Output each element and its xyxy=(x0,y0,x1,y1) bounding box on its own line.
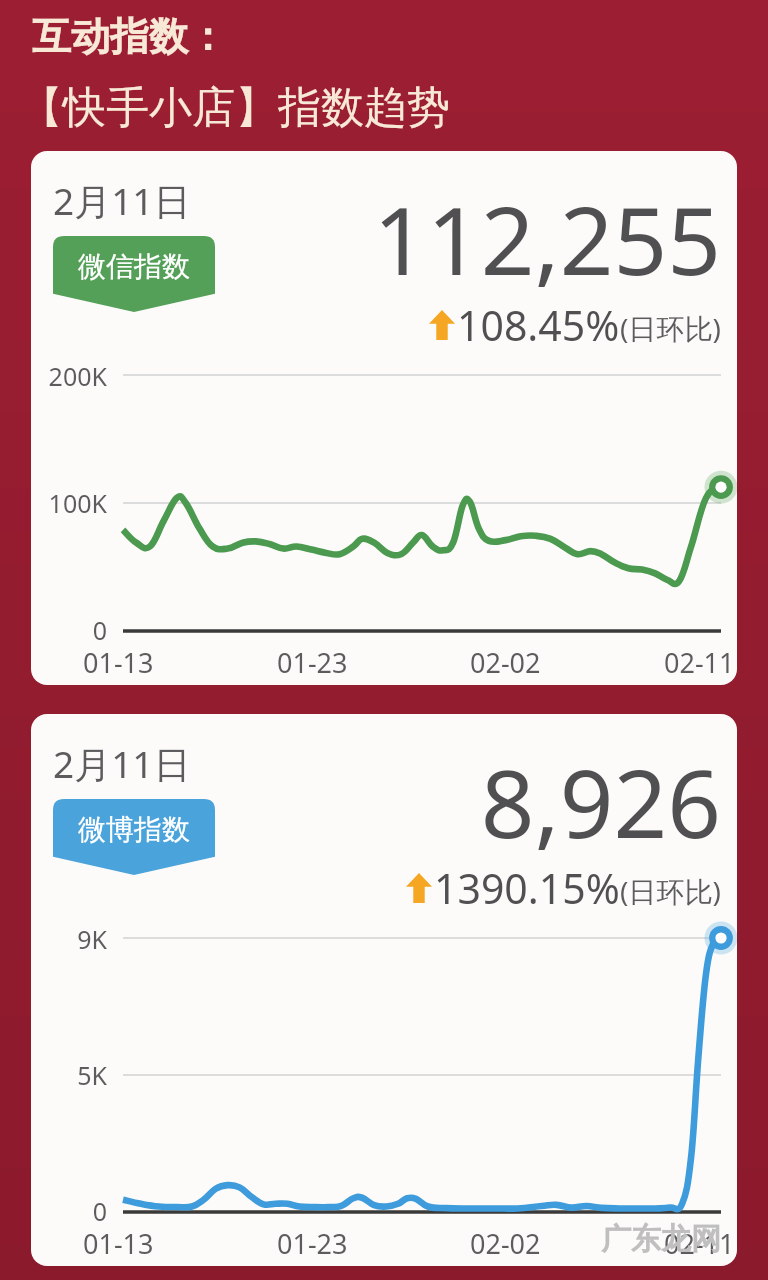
staticText: 【快手小店】指数趋势 xyxy=(20,81,450,135)
staticText: (日环比) xyxy=(620,309,721,347)
staticText: 9K xyxy=(31,922,107,956)
other: Increase xyxy=(429,310,455,340)
staticText: 02-11 xyxy=(664,644,735,681)
staticText: 200K xyxy=(31,359,107,393)
staticText: 02-02 xyxy=(470,1225,541,1262)
staticText: 广东龙网 xyxy=(601,1220,721,1258)
staticText: 0 xyxy=(31,613,107,647)
staticText: 100K xyxy=(31,486,107,520)
other: Increase xyxy=(406,873,432,903)
button[interactable]: 微信指数 xyxy=(53,236,215,312)
staticText: 02-02 xyxy=(470,644,541,681)
staticText: 01-13 xyxy=(83,1225,154,1262)
button[interactable]: 微博指数 xyxy=(53,799,215,875)
staticText: 112,255 xyxy=(373,175,721,303)
staticText: 108.45% xyxy=(457,297,620,353)
staticText: (日环比) xyxy=(620,872,721,910)
staticText: 01-23 xyxy=(277,1225,348,1262)
staticText: 2月11日 xyxy=(53,175,191,226)
button[interactable]: 2月11日 xyxy=(31,714,737,1266)
staticText: 1390.15% xyxy=(434,860,620,916)
staticText: 互动指数： xyxy=(32,12,227,61)
staticText: 01-23 xyxy=(277,644,348,681)
staticText: 2月11日 xyxy=(53,738,191,789)
button[interactable]: 2月11日 xyxy=(31,151,737,685)
staticText: 8,926 xyxy=(480,738,721,866)
staticText: 02-11 xyxy=(664,1225,735,1262)
staticText: 5K xyxy=(31,1058,107,1092)
staticText: 微信指数 xyxy=(78,249,190,284)
staticText: 微博指数 xyxy=(78,812,190,847)
staticText: 0 xyxy=(31,1194,107,1228)
staticText: 01-13 xyxy=(83,644,154,681)
